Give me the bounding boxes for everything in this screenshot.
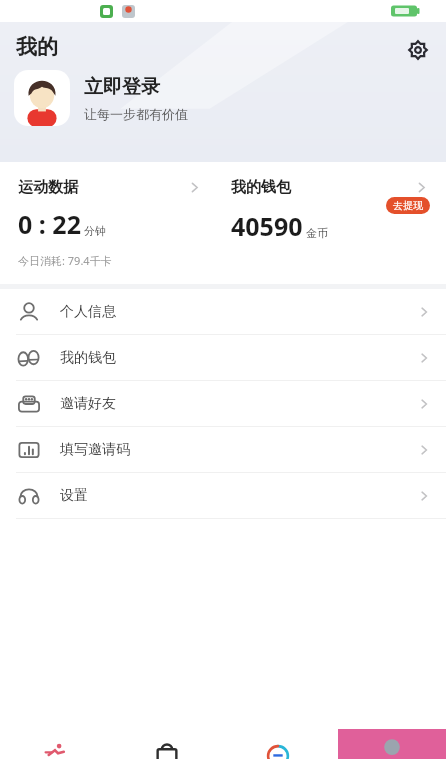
- staticText: 运动数据: [18, 178, 78, 197]
- button[interactable]: Discover: [222, 729, 334, 759]
- staticText: 邀请好友: [60, 395, 116, 413]
- staticText: 设置: [60, 487, 88, 505]
- button[interactable]: 填写邀请码: [0, 427, 446, 473]
- button[interactable]: Shop: [111, 729, 222, 759]
- staticText: 分钟: [84, 224, 106, 238]
- staticText: 我的: [16, 34, 58, 60]
- staticText: 立即登录: [84, 75, 160, 99]
- button[interactable]: 立即登录: [14, 70, 188, 126]
- button[interactable]: Settings: [400, 32, 436, 68]
- staticText: 0 : 22: [18, 207, 81, 241]
- staticText: 填写邀请码: [60, 441, 130, 459]
- button[interactable]: 我的钱包: [223, 162, 446, 284]
- button[interactable]: 个人信息: [0, 289, 446, 335]
- button[interactable]: Run: [0, 729, 111, 759]
- staticText: 我的钱包: [231, 178, 291, 197]
- staticText: 让每一步都有价值: [84, 106, 188, 122]
- staticText: 今日消耗: 79.4千卡: [18, 253, 112, 268]
- button[interactable]: Profile: [338, 729, 446, 759]
- button[interactable]: 我的钱包: [0, 335, 446, 381]
- button[interactable]: 邀请好友: [0, 381, 446, 427]
- button[interactable]: 设置: [0, 473, 446, 519]
- staticText: 去提现: [393, 199, 423, 212]
- staticText: 我的钱包: [60, 349, 116, 367]
- staticText: 个人信息: [60, 303, 116, 321]
- staticText: 金币: [306, 226, 328, 240]
- button[interactable]: 运动数据: [0, 162, 223, 284]
- staticText: 40590: [231, 209, 303, 243]
- button[interactable]: 去提现: [386, 197, 430, 214]
